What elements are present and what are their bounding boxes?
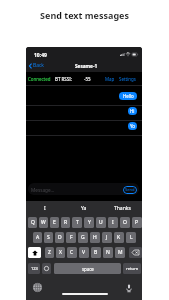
staticText: H xyxy=(93,234,97,241)
staticText: J xyxy=(106,234,108,241)
button[interactable]: Z xyxy=(45,247,54,258)
button[interactable]: C xyxy=(67,247,77,258)
button[interactable]: E xyxy=(50,217,59,228)
button[interactable]: Emoji xyxy=(42,263,51,274)
staticText: E xyxy=(53,219,56,226)
button[interactable]: 123 xyxy=(28,263,40,274)
staticText: Sesame-1 xyxy=(75,63,98,69)
button[interactable]: Y xyxy=(84,217,94,228)
staticText: Hello xyxy=(123,93,134,99)
staticText: BT RSSI: xyxy=(55,76,72,82)
staticText: F xyxy=(70,234,73,241)
button[interactable]: Back xyxy=(28,61,45,70)
staticText: Yo xyxy=(130,123,135,129)
button[interactable]: B xyxy=(91,247,101,258)
button[interactable]: P xyxy=(132,217,142,228)
button[interactable]: X xyxy=(56,247,65,258)
staticText: W xyxy=(41,219,46,226)
staticText: C xyxy=(70,249,74,256)
staticText: X xyxy=(59,249,62,256)
staticText: M xyxy=(118,249,123,256)
button[interactable]: R xyxy=(61,217,70,228)
staticText: return xyxy=(126,266,139,272)
button[interactable]: I xyxy=(26,201,64,215)
staticText: Thanks xyxy=(114,205,131,212)
staticText: S xyxy=(47,234,50,241)
button[interactable]: Map xyxy=(103,74,117,84)
button[interactable]: G xyxy=(78,232,88,243)
button[interactable]: U xyxy=(96,217,106,228)
button[interactable]: Settings xyxy=(117,74,138,84)
button[interactable]: return xyxy=(123,263,141,274)
button[interactable]: Hi xyxy=(128,107,137,115)
staticText: T xyxy=(76,219,79,226)
button[interactable]: O xyxy=(120,217,130,228)
staticText: 123 xyxy=(31,266,38,271)
button[interactable]: Dictation xyxy=(126,284,132,292)
staticText: Settings xyxy=(119,76,136,82)
button[interactable]: H xyxy=(90,232,100,243)
button[interactable]: W xyxy=(39,217,48,228)
button[interactable]: Yo xyxy=(128,122,137,130)
staticText: Ya xyxy=(81,205,87,212)
staticText: K xyxy=(117,234,121,241)
staticText: I xyxy=(44,205,46,212)
button[interactable]: Thanks xyxy=(103,201,142,215)
button[interactable]: Shift xyxy=(28,247,41,258)
button[interactable]: N xyxy=(103,247,113,258)
staticText: Back xyxy=(33,62,44,69)
staticText: V xyxy=(82,249,86,256)
staticText: 10:49 xyxy=(34,52,47,59)
button[interactable]: Change keyboard xyxy=(33,283,42,292)
button[interactable]: Q xyxy=(28,217,37,228)
staticText: Send xyxy=(125,187,135,193)
button[interactable]: M xyxy=(115,247,125,258)
staticText: G xyxy=(81,234,85,241)
button[interactable]: K xyxy=(114,232,124,243)
staticText: Connected xyxy=(28,76,51,82)
button[interactable]: L xyxy=(126,232,136,243)
staticText: I xyxy=(112,219,114,226)
staticText: Message... xyxy=(31,187,55,193)
staticText: Z xyxy=(48,249,51,256)
staticText: Map xyxy=(105,76,115,82)
button[interactable]: S xyxy=(44,232,53,243)
button[interactable]: D xyxy=(55,232,64,243)
button[interactable]: Ya xyxy=(64,201,103,215)
button[interactable]: J xyxy=(102,232,112,243)
button[interactable]: Delete xyxy=(129,247,142,258)
button[interactable]: F xyxy=(66,232,76,243)
staticText: R xyxy=(64,219,68,226)
staticText: space xyxy=(82,266,94,272)
staticText: O xyxy=(123,219,127,226)
staticText: P xyxy=(135,219,139,226)
staticText: B xyxy=(94,249,98,256)
button[interactable]: A xyxy=(33,232,42,243)
button[interactable]: V xyxy=(79,247,89,258)
button[interactable]: Hello xyxy=(119,92,137,100)
staticText: L xyxy=(130,234,133,241)
button[interactable]: T xyxy=(72,217,82,228)
button[interactable]: Message... xyxy=(28,183,139,195)
staticText: Hi xyxy=(130,108,135,114)
staticText: Q xyxy=(31,219,35,226)
staticText: N xyxy=(106,249,110,256)
staticText: -55 xyxy=(84,76,91,82)
staticText: Send text messages xyxy=(0,9,169,21)
button[interactable]: space xyxy=(54,263,121,274)
button[interactable]: Send xyxy=(123,186,137,194)
staticText: Y xyxy=(88,219,91,226)
staticText: D xyxy=(58,234,62,241)
button[interactable]: I xyxy=(108,217,118,228)
staticText: U xyxy=(99,219,103,226)
staticText: A xyxy=(36,234,40,241)
